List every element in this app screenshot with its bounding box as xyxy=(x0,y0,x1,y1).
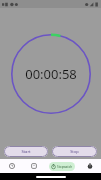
button[interactable]: Stop xyxy=(52,146,97,157)
staticText: 00:00:58 xyxy=(25,65,77,83)
button[interactable]: Alarm xyxy=(0,159,23,173)
button[interactable]: Timer xyxy=(79,159,101,173)
button[interactable]: Clock xyxy=(23,159,45,173)
staticText: Stop xyxy=(70,149,79,154)
staticText: Stopwatch xyxy=(57,165,73,169)
staticText: Start xyxy=(21,149,31,154)
button[interactable]: Stopwatch xyxy=(49,162,75,171)
button[interactable]: Start xyxy=(4,146,48,157)
